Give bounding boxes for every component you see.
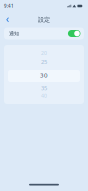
button[interactable]: 通知 bbox=[4, 27, 84, 39]
staticText: 9:41 bbox=[4, 3, 14, 9]
staticText: 35 bbox=[41, 84, 47, 92]
staticText: 30 bbox=[40, 71, 48, 79]
staticText: 20 bbox=[41, 50, 47, 57]
staticText: 40 bbox=[41, 92, 47, 99]
staticText: 通知 bbox=[9, 30, 19, 37]
button[interactable]: Back bbox=[3, 14, 12, 25]
staticText: 25 bbox=[41, 58, 47, 66]
staticText: 設定 bbox=[38, 16, 50, 24]
